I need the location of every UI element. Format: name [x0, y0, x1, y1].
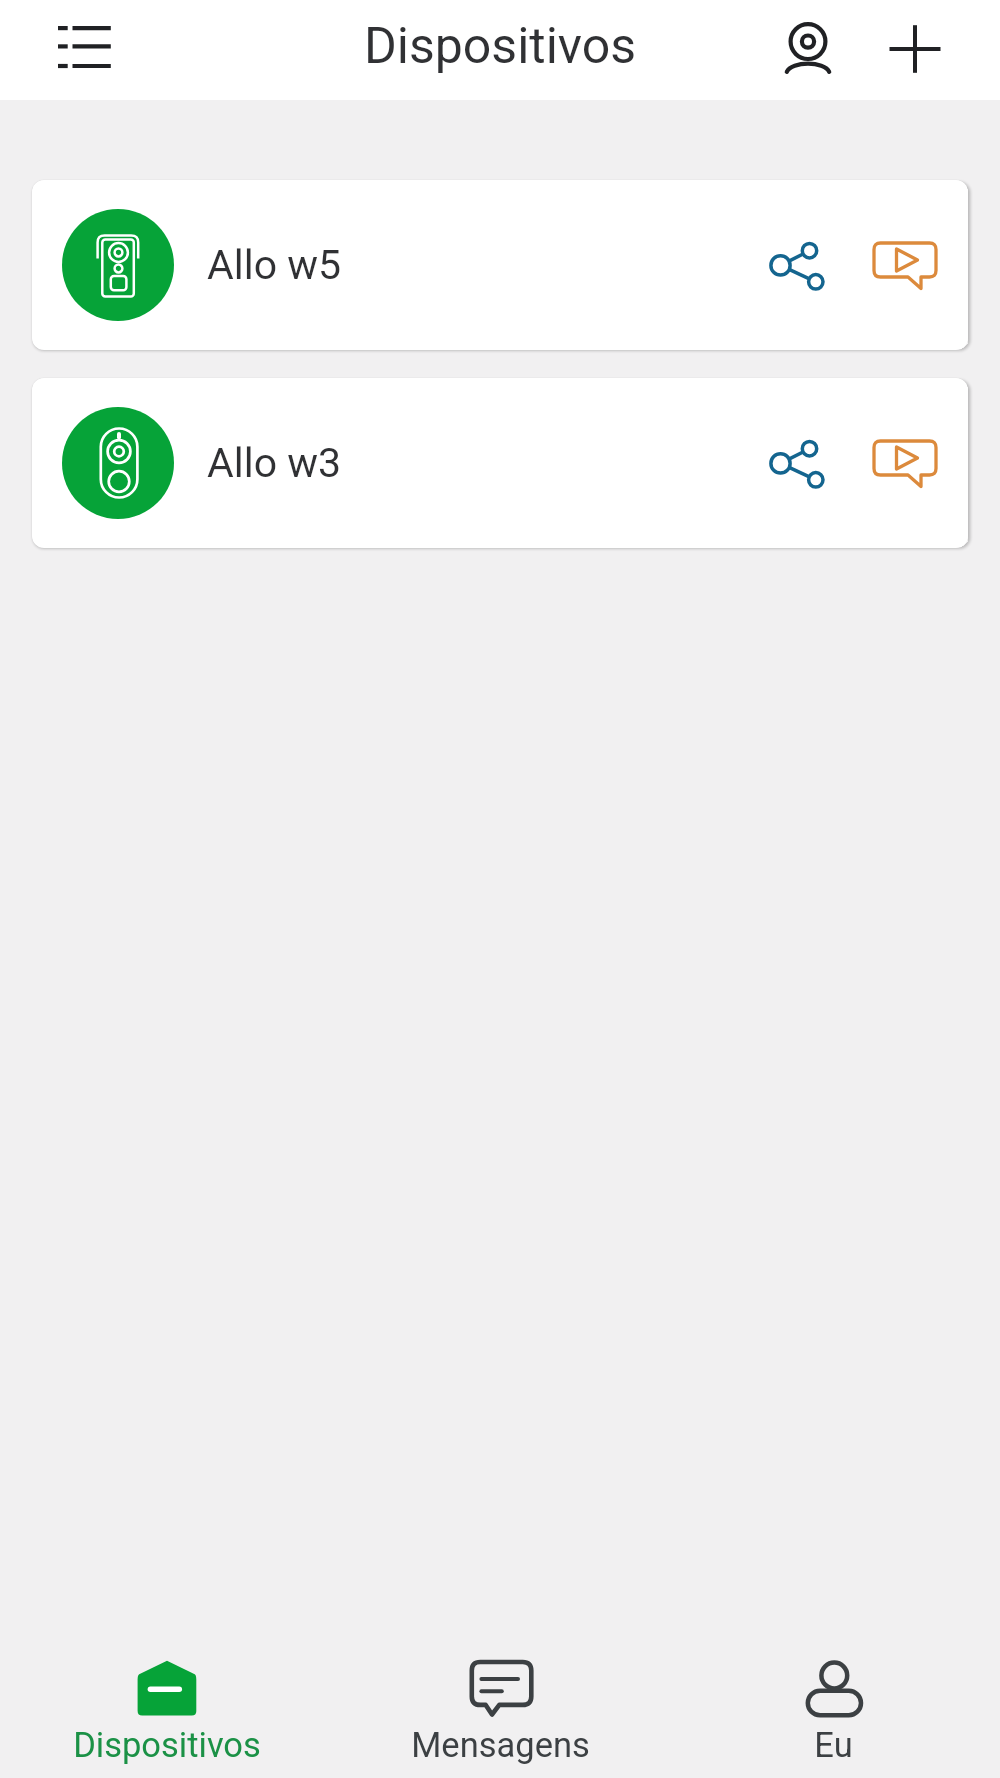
button[interactable]: Allo w5	[32, 180, 968, 350]
staticText: Allo w5	[207, 241, 342, 289]
button[interactable]: Share	[756, 221, 844, 309]
button[interactable]: Eu	[667, 1600, 1000, 1765]
staticText: Dispositivos	[364, 17, 637, 76]
button[interactable]: Share	[756, 419, 844, 507]
button[interactable]: Account	[767, 8, 848, 88]
button[interactable]: Mensagens	[334, 1600, 667, 1765]
staticText: Eu	[814, 1725, 853, 1765]
staticText: Mensagens	[411, 1725, 590, 1765]
button[interactable]: Allo w3	[32, 378, 968, 548]
button[interactable]: Dispositivos	[0, 1600, 334, 1765]
button[interactable]: Add	[875, 8, 955, 90]
staticText: Dispositivos	[73, 1725, 261, 1765]
staticText: Allo w3	[207, 439, 342, 487]
button[interactable]: Play message	[861, 419, 949, 507]
button[interactable]: Play message	[861, 221, 949, 309]
button[interactable]: Menu	[44, 7, 125, 87]
